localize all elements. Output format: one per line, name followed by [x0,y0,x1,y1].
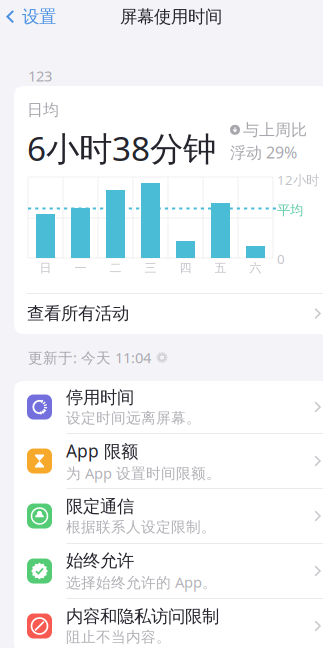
button[interactable]: 内容和隐私访问限制 [14,599,323,648]
staticText: 一 [74,261,86,275]
staticText: 根据联系人设定限制。 [66,518,216,536]
staticText: 12小时 [277,171,319,189]
staticText: 平均 [277,202,303,218]
staticText: 停用时间 [66,387,134,408]
staticText: 六 [249,261,261,275]
button[interactable]: App 限额 [14,434,323,488]
staticText: 设置 [22,6,56,27]
button[interactable]: 始终允许 [14,544,323,598]
staticText: 0 [277,250,285,268]
staticText: 为 App 设置时间限额。 [66,463,221,483]
staticText: App 限额 [66,439,138,462]
staticText: 内容和隐私访问限制 [66,606,219,627]
staticText: 浮动 29% [230,142,297,163]
staticText: 三 [144,261,156,275]
staticText: 查看所有活动 [27,303,129,324]
button[interactable]: 停用时间 [14,381,323,433]
staticText: 设定时间远离屏幕。 [66,409,201,427]
staticText: 二 [109,261,121,275]
staticText: 四 [179,261,191,275]
staticText: 选择始终允许的 App。 [66,572,217,592]
staticText: 屏幕使用时间 [120,6,222,27]
staticText: 阻止不当内容。 [66,628,171,646]
staticText: 五 [214,261,226,275]
staticText: 与上周比 [243,120,307,140]
button[interactable]: 查看所有活动 [14,293,323,334]
staticText: 限定通信 [66,496,134,517]
staticText: 日 [39,261,51,275]
button[interactable]: 设置 [0,2,62,31]
staticText: 更新于: 今天 11:04 [28,348,151,367]
staticText: 123 [28,66,52,85]
staticText: 6小时38分钟 [27,126,216,170]
staticText: 日均 [27,100,59,120]
button[interactable]: 限定通信 [14,489,323,543]
staticText: 始终允许 [66,550,134,571]
